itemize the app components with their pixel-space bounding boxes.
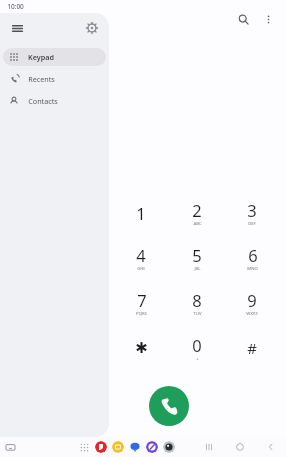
staticText: Contacts (28, 96, 58, 106)
button[interactable]: 7 (115, 280, 167, 325)
staticText: Recents (28, 74, 55, 84)
button[interactable]: Recents (3, 70, 106, 88)
button[interactable]: 1 (115, 190, 167, 235)
staticText: MNO (247, 266, 258, 272)
staticText: + (196, 356, 199, 362)
button[interactable]: Recent apps (202, 440, 216, 454)
button[interactable]: 3 (226, 190, 278, 235)
staticText: 4 (136, 244, 146, 266)
button[interactable]: Keypad (3, 48, 106, 66)
staticText: 8 (192, 289, 202, 311)
button[interactable]: Keyboard (5, 442, 16, 453)
staticText: WXYZ (246, 311, 258, 317)
staticText: PQRS (136, 311, 147, 317)
staticText: ✱ (135, 339, 148, 356)
staticText: 3 (247, 199, 257, 221)
button[interactable]: App (163, 441, 175, 453)
button[interactable]: All apps (79, 442, 90, 453)
button[interactable]: # (226, 325, 278, 370)
button[interactable]: Back (264, 440, 278, 454)
button[interactable]: 9 (226, 280, 278, 325)
staticText: Keypad (28, 52, 54, 62)
button[interactable]: Contacts (3, 92, 106, 110)
button[interactable]: App (95, 441, 107, 453)
button[interactable]: App (146, 441, 158, 453)
staticText: GHI (137, 266, 145, 272)
button[interactable]: 0 (171, 325, 223, 370)
button[interactable]: More options (256, 7, 280, 31)
button[interactable]: Home (233, 440, 247, 454)
staticText: 5 (192, 244, 202, 266)
button[interactable]: App (129, 441, 141, 453)
staticText: 2 (192, 199, 202, 221)
button[interactable]: Call (149, 386, 189, 426)
staticText: 7 (137, 289, 147, 311)
button[interactable]: 6 (226, 235, 278, 280)
button[interactable]: Search (230, 6, 256, 32)
button[interactable]: Open navigation menu (6, 17, 28, 39)
staticText: 0 (192, 334, 202, 356)
staticText: 9 (247, 289, 257, 311)
staticText: 1 (136, 202, 146, 224)
staticText: # (247, 338, 257, 358)
button[interactable]: 8 (171, 280, 223, 325)
button[interactable]: 2 (171, 190, 223, 235)
button[interactable]: App (112, 441, 124, 453)
button[interactable]: Settings (81, 17, 103, 39)
button[interactable]: 4 (115, 235, 167, 280)
button[interactable]: 5 (171, 235, 223, 280)
staticText: DEF (248, 221, 256, 227)
staticText: TUV (193, 311, 202, 317)
staticText: 6 (248, 244, 258, 266)
staticText: 10:00 (7, 2, 24, 11)
staticText: JKL (194, 266, 201, 272)
button[interactable]: ✱ (115, 325, 167, 370)
staticText: ABC (193, 221, 202, 227)
